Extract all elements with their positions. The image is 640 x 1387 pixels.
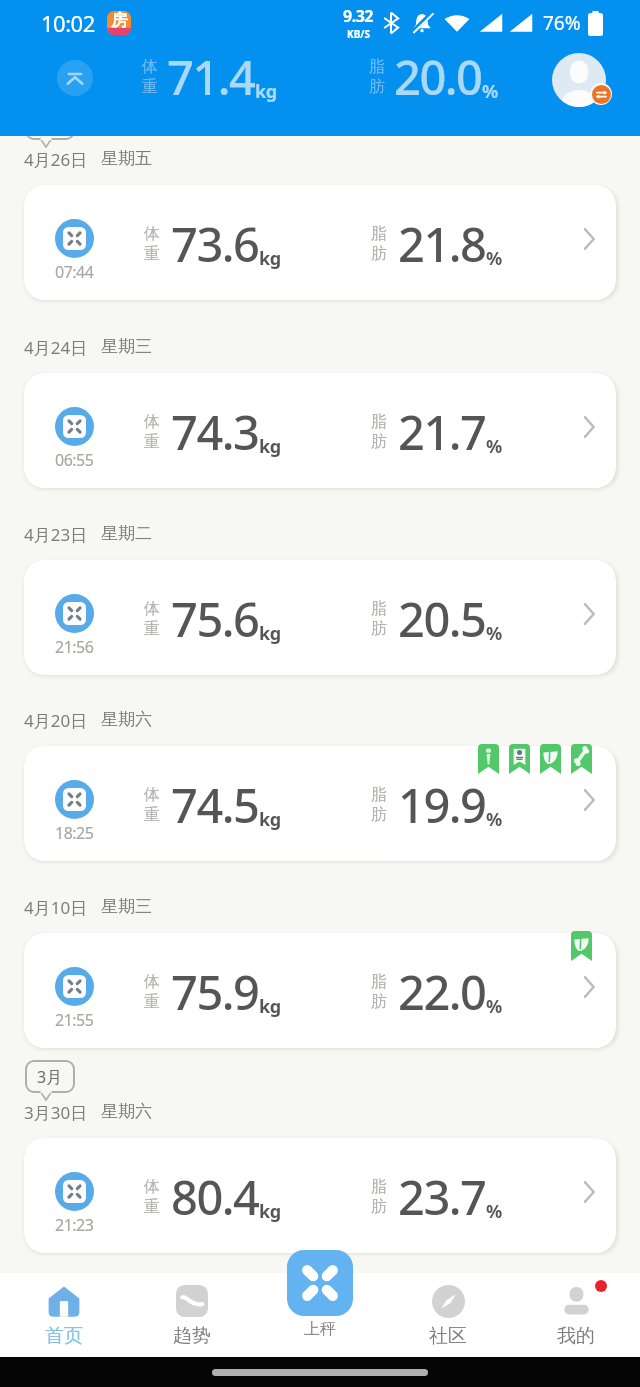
staticText: 74.5 [171, 773, 259, 837]
staticText: 首页 [45, 1324, 83, 1348]
staticText: 重 [142, 77, 158, 97]
staticText: 9.32 [343, 5, 373, 27]
staticText: 肪 [371, 619, 387, 639]
staticText: 重 [144, 1197, 160, 1217]
staticText: 肪 [371, 992, 387, 1012]
staticText: kg [259, 621, 281, 646]
staticText: 星期五 [101, 148, 152, 169]
staticText: 体 [144, 412, 160, 432]
staticText: 80.4 [171, 1165, 259, 1229]
staticText: % [486, 1199, 502, 1224]
staticText: 18:25 [55, 822, 94, 844]
staticText: 脂 [369, 57, 385, 77]
staticText: kg [259, 1199, 281, 1224]
staticText: kg [259, 807, 281, 832]
staticText: 星期三 [101, 896, 152, 917]
staticText: 21:55 [55, 1009, 94, 1031]
staticText: 10:02 [41, 8, 95, 38]
staticText: 22.0 [398, 960, 486, 1024]
staticText: 肪 [371, 805, 387, 825]
staticText: 肪 [371, 1197, 387, 1217]
staticText: KB/S [347, 27, 370, 41]
staticText: 脂 [371, 785, 387, 805]
staticText: kg [259, 434, 281, 459]
staticText: 体 [144, 224, 160, 244]
staticText: 73.6 [171, 212, 259, 276]
button[interactable]: 18:25 [24, 746, 616, 861]
button[interactable]: Weigh in [284, 1250, 356, 1339]
staticText: 重 [144, 805, 160, 825]
staticText: 71.4 [167, 45, 255, 109]
staticText: 肪 [371, 432, 387, 452]
staticText: 脂 [371, 599, 387, 619]
staticText: 21:56 [55, 636, 94, 658]
staticText: kg [259, 246, 281, 271]
staticText: 社区 [429, 1324, 467, 1348]
staticText: 重 [144, 244, 160, 264]
staticText: 趋势 [173, 1324, 211, 1348]
staticText: 脂 [371, 1177, 387, 1197]
staticText: 星期二 [101, 523, 152, 544]
staticText: 21.8 [398, 212, 486, 276]
staticText: 07:44 [55, 261, 94, 283]
staticText: kg [255, 79, 277, 104]
staticText: 4月24日 [24, 336, 88, 359]
staticText: 21.7 [398, 400, 486, 464]
button[interactable]: 07:44 [24, 185, 616, 300]
button[interactable]: 21:55 [24, 933, 616, 1048]
staticText: % [482, 79, 498, 104]
button[interactable]: Profile [552, 53, 606, 107]
button[interactable]: Collapse header [57, 60, 93, 96]
button[interactable]: 趋势 [150, 1285, 234, 1348]
staticText: 4月10日 [24, 896, 88, 919]
staticText: 4月26日 [24, 148, 88, 171]
button[interactable]: 我的 [534, 1285, 618, 1348]
staticText: 3月30日 [24, 1101, 88, 1124]
staticText: 上秤 [304, 1319, 336, 1339]
staticText: 21:23 [55, 1214, 94, 1236]
staticText: 我的 [557, 1324, 595, 1348]
button[interactable]: 社区 [406, 1285, 490, 1348]
staticText: 体 [144, 785, 160, 805]
staticText: 76% [543, 10, 581, 36]
staticText: 74.3 [171, 400, 259, 464]
button[interactable]: 21:23 [24, 1138, 616, 1253]
staticText: 3月 [37, 1066, 63, 1088]
staticText: 星期三 [101, 336, 152, 357]
staticText: 重 [144, 992, 160, 1012]
staticText: kg [259, 994, 281, 1019]
button[interactable]: 21:56 [24, 560, 616, 675]
staticText: % [486, 807, 502, 832]
staticText: 星期六 [101, 1101, 152, 1122]
staticText: 19.9 [398, 773, 486, 837]
staticText: 75.6 [171, 587, 259, 651]
staticText: % [486, 434, 502, 459]
staticText: 体 [142, 57, 158, 77]
staticText: 重 [144, 432, 160, 452]
staticText: 体 [144, 599, 160, 619]
staticText: 4月23日 [24, 523, 88, 546]
staticText: % [486, 246, 502, 271]
staticText: 体 [144, 1177, 160, 1197]
staticText: 星期六 [101, 709, 152, 730]
staticText: 肪 [371, 244, 387, 264]
staticText: % [486, 621, 502, 646]
staticText: 20.0 [394, 45, 482, 109]
staticText: 体 [144, 972, 160, 992]
staticText: 20.5 [398, 587, 486, 651]
staticText: 23.7 [398, 1165, 486, 1229]
staticText: 房 [111, 11, 128, 31]
button[interactable]: 首页 [22, 1285, 106, 1348]
button[interactable]: 06:55 [24, 373, 616, 488]
staticText: 75.9 [171, 960, 259, 1024]
staticText: % [486, 994, 502, 1019]
staticText: 重 [144, 619, 160, 639]
other: Weigh in [287, 1250, 353, 1316]
staticText: 脂 [371, 412, 387, 432]
staticText: 06:55 [55, 449, 94, 471]
staticText: 肪 [369, 77, 385, 97]
staticText: 脂 [371, 972, 387, 992]
staticText: 4月20日 [24, 709, 88, 732]
staticText: 脂 [371, 224, 387, 244]
